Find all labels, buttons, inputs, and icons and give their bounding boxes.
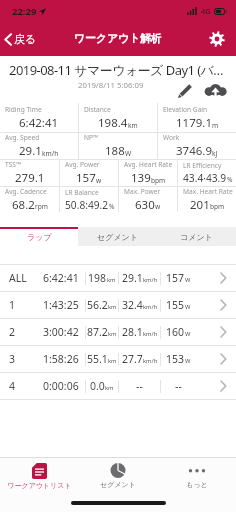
staticText: km/h — [143, 276, 158, 284]
staticText: km/h — [143, 330, 158, 338]
button[interactable]: ALL — [0, 265, 236, 291]
staticText: 0.0 — [90, 379, 105, 393]
staticText: 3 — [9, 352, 16, 366]
staticText: bpm — [151, 176, 166, 185]
button[interactable]: Edit — [174, 82, 196, 100]
button[interactable]: ワークアウトリスト — [0, 458, 78, 494]
staticText: 6:42:41 — [43, 271, 79, 285]
button[interactable]: Upload — [201, 82, 229, 100]
button[interactable]: 4 — [0, 373, 236, 399]
staticText: km — [108, 303, 117, 311]
button[interactable]: 戻る — [0, 26, 45, 52]
staticText: 3:00:42 — [43, 325, 79, 339]
staticText: Work — [163, 133, 180, 142]
staticText: 戻る — [14, 32, 37, 46]
staticText: km — [108, 357, 117, 365]
staticText: kJ — [212, 149, 218, 158]
staticText: 1 — [9, 298, 16, 312]
staticText: 0:00:06 — [43, 379, 79, 393]
staticText: 29.1 — [19, 143, 42, 159]
staticText: Avg. Speed — [5, 133, 40, 142]
button[interactable]: もっと — [157, 458, 236, 494]
staticText: 4G — [201, 6, 211, 16]
staticText: 50.8:49.2 — [65, 198, 109, 212]
button[interactable]: セグメント — [78, 227, 157, 246]
staticText: % — [227, 175, 231, 184]
staticText: ALL — [9, 271, 27, 285]
staticText: TSS™ — [5, 160, 22, 169]
staticText: km/h — [143, 303, 158, 311]
button[interactable]: 3 — [0, 346, 236, 372]
staticText: W — [185, 330, 191, 338]
staticText: 29.1 — [122, 271, 143, 285]
staticText: % — [109, 202, 113, 211]
staticText: w — [96, 176, 102, 185]
staticText: 28.1 — [122, 325, 143, 339]
staticText: LR Efficiency — [183, 161, 222, 170]
staticText: 1:43:25 — [43, 298, 79, 312]
staticText: 153 — [166, 352, 185, 366]
staticText: 279.1 — [15, 170, 45, 186]
staticText: km — [105, 384, 114, 392]
staticText: セグメント — [100, 480, 136, 489]
staticText: 2019-08-11 サマーウォーズ Day1 (バ… — [9, 61, 224, 79]
staticText: 3746.9 — [176, 143, 212, 159]
staticText: 56.2 — [87, 298, 108, 312]
button[interactable]: 2 — [0, 319, 236, 345]
staticText: 157 — [166, 271, 185, 285]
staticText: 68.2 — [12, 197, 35, 212]
staticText: LR Balance — [65, 188, 99, 197]
staticText: 160 — [166, 325, 185, 339]
staticText: Max. Power — [124, 187, 161, 196]
staticText: Riding Time — [5, 105, 42, 114]
staticText: 43.4·43.9 — [183, 171, 227, 185]
button[interactable]: コメント — [157, 227, 236, 246]
staticText: Avg. Heart Rate — [124, 160, 173, 169]
staticText: Avg. Cadence — [5, 187, 47, 196]
staticText: NP™ — [84, 133, 99, 142]
staticText: 157 — [76, 170, 96, 186]
staticText: -- — [136, 379, 143, 393]
staticText: コメント — [180, 232, 213, 242]
staticText: 1:58:26 — [43, 352, 79, 366]
staticText: W — [185, 303, 191, 311]
button[interactable]: セグメント — [78, 458, 157, 494]
staticText: ワークアウト解析 — [74, 32, 162, 46]
staticText: セグメント — [97, 232, 138, 242]
staticText: Elevation Gain — [163, 105, 208, 114]
staticText: 198.4 — [98, 115, 128, 131]
staticText: 2019/8/11 5:06:09 — [78, 80, 144, 91]
staticText: 188 — [105, 143, 125, 159]
staticText: 4 — [9, 379, 16, 393]
staticText: もっと — [186, 480, 208, 489]
button[interactable]: Settings — [205, 27, 229, 51]
staticText: 87.2 — [87, 325, 108, 339]
staticText: W — [125, 149, 132, 158]
staticText: km/h — [42, 149, 59, 158]
staticText: km — [107, 276, 116, 284]
staticText: 201 — [190, 197, 210, 212]
staticText: 1179.1 — [176, 115, 212, 131]
staticText: 6:42:41 — [19, 115, 59, 131]
staticText: 155 — [166, 298, 185, 312]
staticText: rpm — [35, 202, 48, 211]
staticText: bpm — [210, 202, 225, 211]
button[interactable]: 1 — [0, 292, 236, 318]
staticText: km/h — [143, 357, 158, 365]
staticText: 32.4 — [122, 298, 143, 312]
staticText: 198 — [88, 271, 107, 285]
staticText: km — [108, 330, 117, 338]
button[interactable]: ラップ — [0, 227, 78, 246]
staticText: ワークアウトリスト — [7, 481, 72, 490]
staticText: km — [128, 121, 138, 130]
staticText: ラップ — [27, 232, 52, 242]
staticText: 27.7 — [122, 352, 143, 366]
staticText: 22:29 — [12, 5, 37, 18]
staticText: w — [155, 202, 161, 211]
staticText: 2 — [9, 325, 16, 339]
staticText: m — [212, 121, 219, 130]
staticText: W — [185, 357, 191, 365]
staticText: 630 — [135, 197, 155, 212]
staticText: Avg. Power — [65, 160, 100, 169]
staticText: Max. Heart Rate — [183, 187, 233, 196]
